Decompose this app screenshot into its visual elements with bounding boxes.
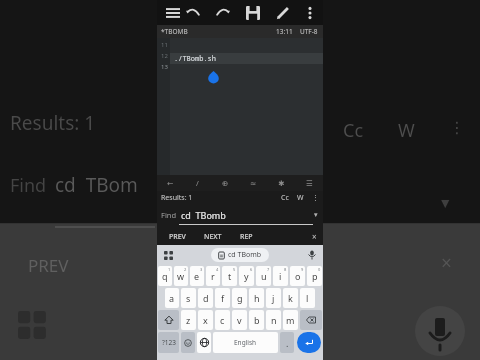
staticText: English (234, 338, 257, 347)
button[interactable]: symbol ⊕ (211, 175, 239, 191)
button[interactable]: g (232, 288, 247, 308)
button[interactable]: y (239, 266, 254, 286)
button[interactable]: Edit (273, 3, 293, 23)
button[interactable]: . (280, 332, 294, 353)
button[interactable]: symbol ≈ (239, 175, 267, 191)
staticText: ✱ (278, 179, 285, 188)
button[interactable]: p (307, 266, 322, 286)
staticText: u (261, 270, 267, 282)
button[interactable]: x (198, 310, 213, 330)
staticText: 11 (161, 41, 168, 49)
button[interactable]: Menu (163, 3, 183, 23)
button[interactable]: symbol / (184, 175, 211, 191)
staticText: t (228, 270, 232, 282)
staticText: cd TBomb (228, 250, 262, 260)
button[interactable]: W (293, 193, 308, 203)
button[interactable]: t (222, 266, 237, 286)
button[interactable]: Expand find (314, 211, 323, 219)
staticText: i (279, 270, 282, 282)
button[interactable]: Undo (183, 3, 203, 23)
staticText: e (194, 270, 200, 282)
button[interactable]: h (249, 288, 264, 308)
button[interactable]: r (206, 266, 220, 286)
staticText: Cc (281, 193, 289, 203)
button[interactable]: w (174, 266, 188, 286)
staticText: Find (161, 210, 177, 220)
button[interactable]: Backspace (300, 310, 322, 330)
button[interactable]: m (283, 310, 298, 330)
staticText: ≈ (250, 179, 257, 188)
staticText: cd TBomb (181, 209, 226, 221)
staticText: PREV (169, 232, 186, 242)
staticText: ⋮ (449, 118, 465, 137)
button[interactable]: a (165, 288, 179, 308)
staticText: Find (10, 173, 47, 198)
staticText: 9 (301, 267, 304, 272)
button[interactable]: REP (233, 229, 260, 245)
button[interactable]: q (158, 266, 172, 286)
staticText: 6 (250, 267, 253, 272)
button[interactable]: l (300, 288, 315, 308)
staticText: ← (167, 179, 174, 188)
button[interactable]: i (273, 266, 288, 286)
button[interactable]: Emoji (181, 332, 195, 353)
button[interactable]: *TBOMB (157, 25, 323, 38)
staticText: ./TBomb.sh (174, 54, 216, 64)
button[interactable]: Cc (277, 193, 293, 203)
button[interactable]: f (215, 288, 230, 308)
button[interactable]: Close find (312, 231, 323, 242)
button[interactable]: NEXT (197, 229, 229, 245)
button[interactable]: PREV (162, 229, 193, 245)
staticText: 0 (318, 267, 321, 272)
button[interactable]: j (266, 288, 281, 308)
staticText: PREV (28, 254, 69, 277)
staticText: NEXT (204, 232, 222, 242)
staticText: Results: 1 (10, 110, 96, 136)
staticText: f (221, 292, 225, 304)
staticText: ▼ (441, 197, 450, 210)
staticText: *TBOMB (161, 27, 188, 36)
button[interactable]: c (215, 310, 230, 330)
staticText: . (286, 337, 289, 349)
button[interactable]: v (232, 310, 247, 330)
staticText: ⊕ (222, 179, 229, 188)
button[interactable]: English (213, 332, 278, 353)
button[interactable]: cd TBomb (211, 248, 269, 262)
button[interactable]: More options (301, 3, 318, 23)
staticText: o (295, 270, 301, 282)
staticText: m (286, 314, 295, 326)
button[interactable]: Open toolbar (157, 245, 179, 265)
staticText: ▾ (314, 211, 318, 219)
button[interactable]: symbol ☰ (295, 175, 323, 191)
button[interactable]: More find options (308, 194, 323, 202)
button[interactable]: n (266, 310, 281, 330)
staticText: ⋮ (312, 194, 319, 202)
staticText: UTF-8 (300, 27, 318, 36)
button[interactable]: b (249, 310, 264, 330)
staticText: p (312, 270, 318, 282)
button[interactable]: symbol ← (157, 175, 184, 191)
button[interactable]: e (190, 266, 204, 286)
staticText: w (177, 270, 185, 282)
staticText: 1 (168, 267, 171, 272)
button[interactable]: z (181, 310, 196, 330)
button[interactable]: Shift (158, 310, 179, 330)
button[interactable]: Enter (297, 332, 321, 353)
staticText: 8 (284, 267, 287, 272)
button[interactable]: o (290, 266, 305, 286)
button[interactable]: Redo (213, 3, 233, 23)
button[interactable]: Find (157, 205, 323, 224)
button[interactable]: Voice input (301, 245, 323, 265)
button[interactable]: symbol ✱ (267, 175, 295, 191)
button[interactable]: Change language (197, 332, 211, 353)
staticText: r (211, 270, 215, 282)
button[interactable]: k (283, 288, 298, 308)
button[interactable]: d (198, 288, 213, 308)
button[interactable]: Save (243, 3, 263, 23)
staticText: v (237, 314, 242, 326)
staticText: 3 (200, 267, 203, 272)
button[interactable]: ?123 (158, 332, 179, 353)
button[interactable]: u (256, 266, 271, 286)
staticText: h (254, 292, 260, 304)
button[interactable]: s (181, 288, 196, 308)
